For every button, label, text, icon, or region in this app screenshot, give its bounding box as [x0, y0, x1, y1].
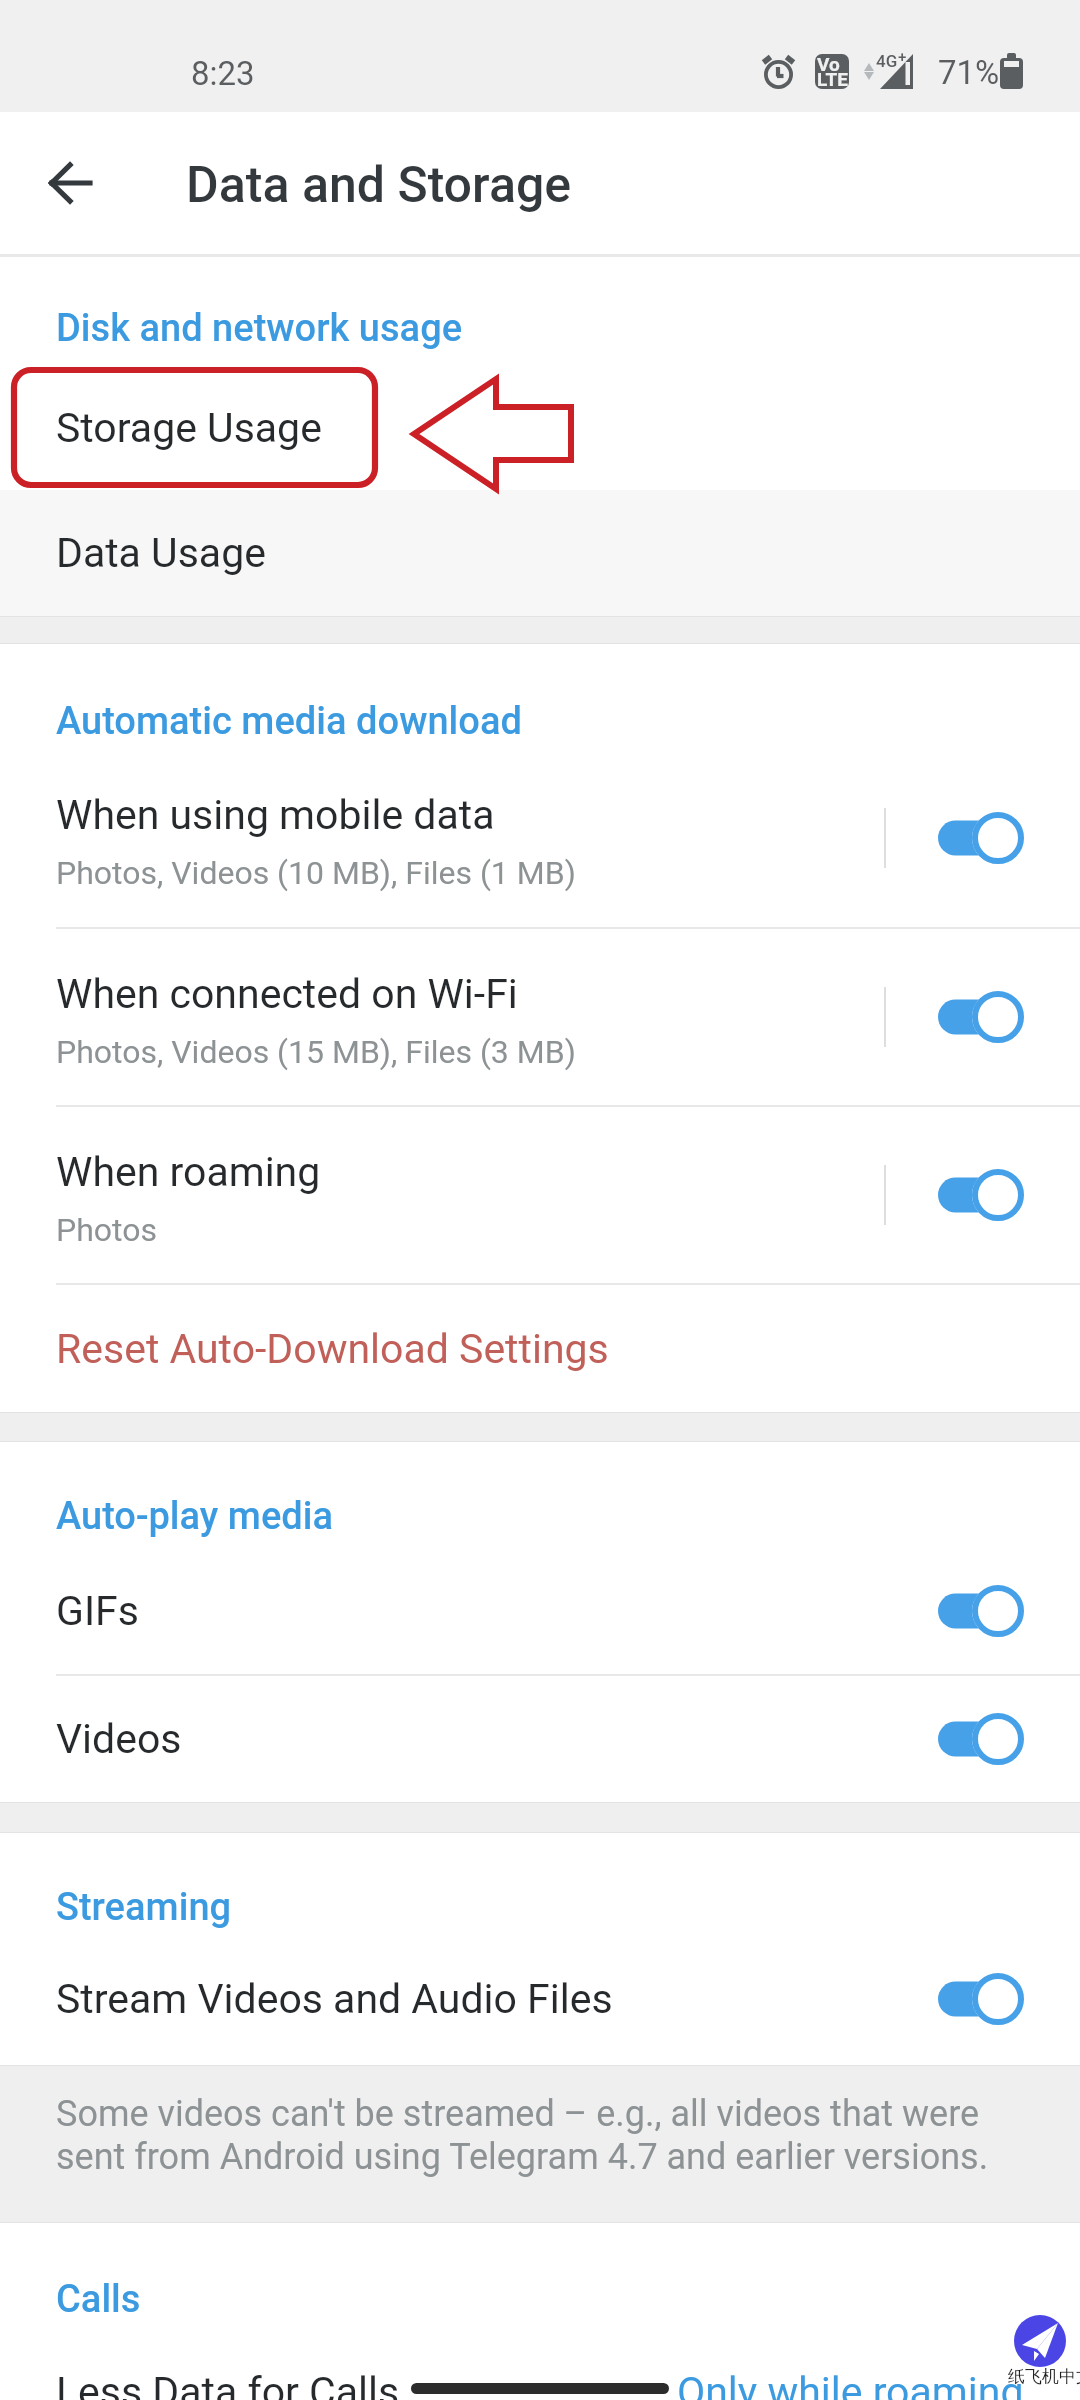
button[interactable]: Data Usage	[0, 490, 1080, 616]
staticText: When connected on Wi-Fi	[56, 970, 518, 1018]
staticText: Some videos can't be streamed – e.g., al…	[56, 2093, 1024, 2178]
staticText: Photos, Videos (15 MB), Files (3 MB)	[56, 1033, 576, 1071]
staticText: Photos, Videos (10 MB), Files (1 MB)	[56, 854, 576, 892]
staticText: Videos	[56, 1715, 182, 1763]
button[interactable]: Storage Usage	[0, 365, 1080, 490]
button[interactable]: Less Data for Calls	[0, 2327, 1080, 2400]
staticText: Photos	[56, 1211, 157, 1249]
button[interactable]: When roaming	[0, 1107, 1080, 1283]
staticText: +	[898, 48, 907, 66]
button[interactable]: Videos	[0, 1676, 1080, 1802]
staticText: Stream Videos and Audio Files	[56, 1975, 613, 2023]
staticText: Calls	[56, 2277, 141, 2322]
staticText: Storage Usage	[56, 404, 322, 452]
staticText: Only while roaming	[677, 2368, 1024, 2400]
staticText: 71%	[938, 53, 1000, 92]
staticText: When using mobile data	[56, 791, 495, 839]
staticText: 纸飞机中文网	[1008, 2366, 1080, 2387]
staticText: Automatic media download	[56, 699, 522, 744]
staticText: 4G	[876, 51, 898, 71]
staticText: When roaming	[56, 1148, 321, 1196]
staticText: Auto-play media	[56, 1494, 334, 1539]
staticText: GIFs	[56, 1587, 139, 1635]
staticText: LTE	[817, 68, 848, 90]
button[interactable]: When using mobile data	[0, 749, 1080, 927]
button[interactable]: Back	[0, 113, 140, 253]
staticText: 8:23	[191, 54, 255, 93]
button[interactable]: When connected on Wi-Fi	[0, 929, 1080, 1105]
button[interactable]: Stream Videos and Audio Files	[0, 1933, 1080, 2065]
staticText: Data and Storage	[186, 156, 572, 215]
staticText: Less Data for Calls	[56, 2368, 400, 2400]
staticText: Vo	[817, 53, 840, 75]
staticText: Disk and network usage	[56, 306, 463, 351]
staticText: Reset Auto-Download Settings	[56, 1325, 609, 1373]
staticText: Streaming	[56, 1885, 232, 1930]
button[interactable]: Reset Auto-Download Settings	[0, 1285, 1080, 1412]
button[interactable]: GIFs	[0, 1548, 1080, 1674]
staticText: Data Usage	[56, 529, 266, 577]
